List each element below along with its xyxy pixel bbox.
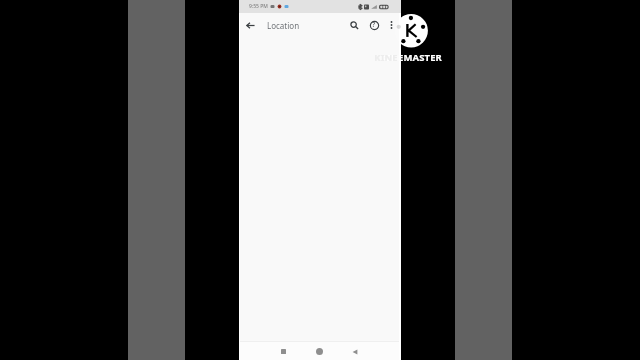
button[interactable]: Help: [366, 17, 382, 33]
button[interactable]: Search: [346, 17, 362, 33]
button[interactable]: More options: [384, 17, 399, 32]
staticText: 9:55 PM: [249, 3, 268, 10]
button[interactable]: Home: [312, 344, 327, 359]
staticText: ?: [372, 20, 376, 30]
button[interactable]: Back: [242, 17, 258, 33]
staticText: Location: [267, 20, 300, 31]
staticText: KINEMASTER: [371, 51, 451, 64]
button[interactable]: Recent apps: [276, 344, 291, 359]
button[interactable]: Back: [347, 344, 362, 359]
staticText: KINEMASTER: [371, 51, 401, 63]
